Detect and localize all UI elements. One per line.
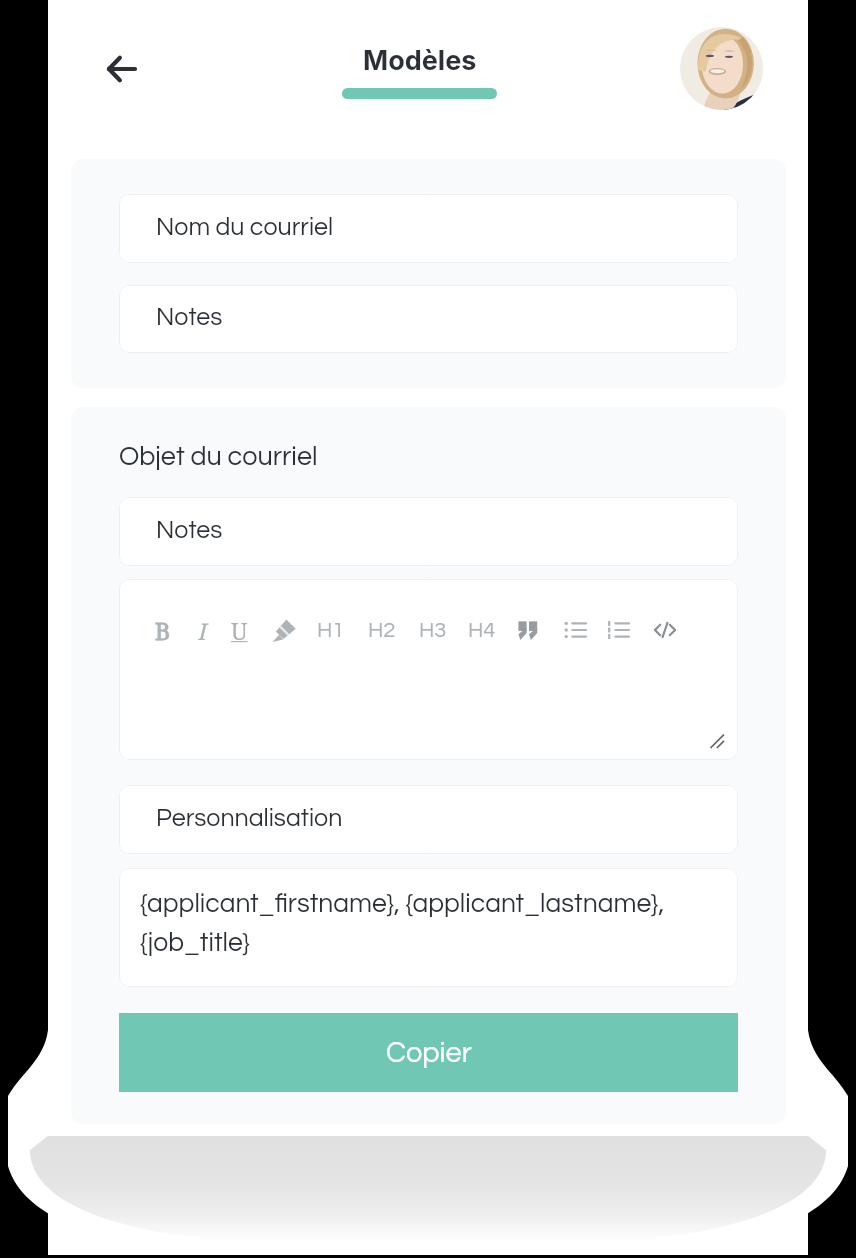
staticText: H1	[317, 619, 345, 642]
button[interactable]: Quote	[512, 613, 546, 647]
button[interactable]: Nom du courriel	[119, 194, 738, 263]
staticText: Nom du courriel	[156, 214, 334, 240]
staticText: B	[155, 615, 171, 646]
staticText: H4	[468, 619, 496, 642]
staticText: Modèles	[363, 44, 477, 77]
button[interactable]: Personnalisation	[119, 785, 738, 854]
button[interactable]: {applicant_firstname}, {applicant_lastna…	[119, 868, 738, 987]
button[interactable]: Numbered list	[601, 613, 635, 647]
staticText: H2	[368, 619, 396, 642]
button[interactable]: Back	[87, 35, 155, 103]
staticText: {applicant_firstname}, {applicant_lastna…	[140, 890, 730, 957]
button[interactable]: Bulleted list	[558, 613, 592, 647]
button[interactable]: Code	[648, 613, 682, 647]
button[interactable]: Underline	[222, 613, 256, 647]
staticText: Notes	[156, 517, 223, 543]
staticText: H3	[419, 619, 447, 642]
button[interactable]: Italic	[184, 613, 218, 647]
button[interactable]: Heading 4	[465, 613, 499, 647]
button[interactable]: Bold	[146, 613, 180, 647]
button[interactable]: Heading 3	[416, 613, 450, 647]
staticText: U	[231, 615, 248, 646]
button[interactable]: Copier	[119, 1013, 738, 1092]
button[interactable]: Profile	[680, 27, 763, 110]
button[interactable]: Heading 1	[314, 613, 348, 647]
staticText: Objet du courriel	[119, 443, 318, 471]
button[interactable]: Notes	[119, 497, 738, 566]
staticText: Copier	[386, 1038, 472, 1068]
staticText: I	[197, 615, 206, 646]
button[interactable]: Highlight	[267, 613, 301, 647]
button[interactable]: Notes	[119, 285, 738, 353]
staticText: Personnalisation	[156, 805, 343, 831]
staticText: Notes	[156, 304, 223, 330]
button[interactable]: Heading 2	[365, 613, 399, 647]
